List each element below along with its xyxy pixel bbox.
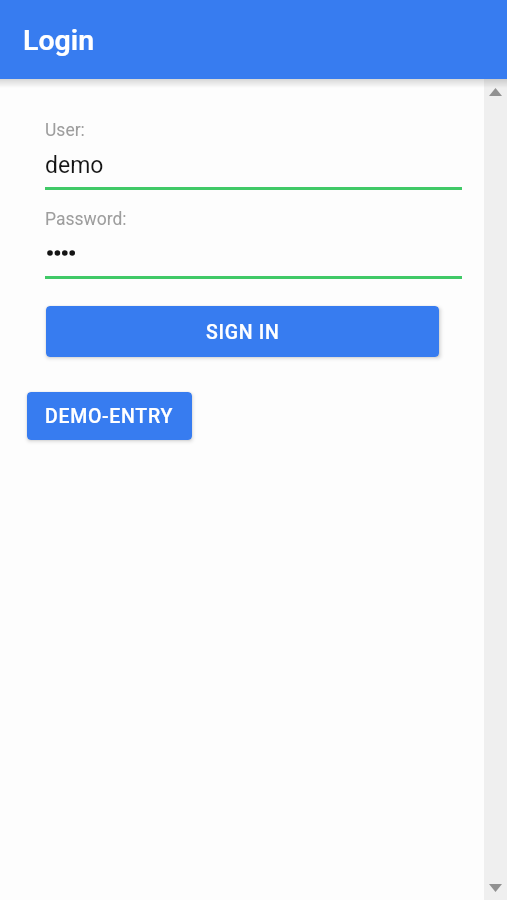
button[interactable]: DEMO-ENTRY (27, 392, 192, 440)
button[interactable]: Scroll up (484, 84, 507, 100)
button[interactable]: SIGN IN (46, 306, 439, 357)
staticText: Login (23, 24, 95, 57)
staticText: User: (45, 120, 85, 141)
staticText: Password: (45, 209, 127, 230)
staticText: DEMO-ENTRY (45, 405, 174, 428)
button[interactable]: Scroll down (484, 880, 507, 896)
staticText: SIGN IN (206, 321, 280, 344)
staticText: demo (45, 152, 104, 179)
